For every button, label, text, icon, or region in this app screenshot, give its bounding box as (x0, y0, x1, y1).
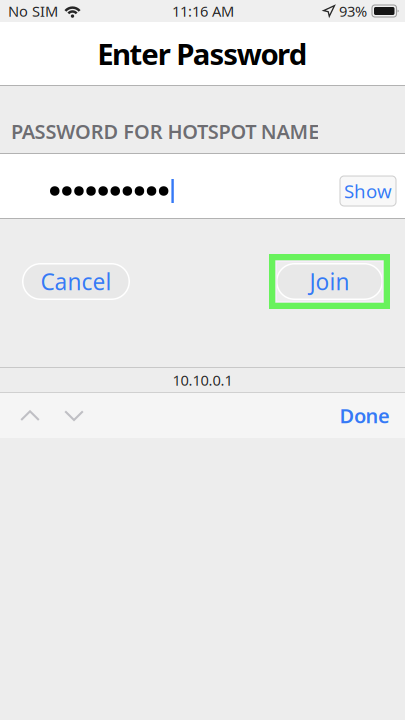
button[interactable]: Previous field (8, 393, 52, 437)
staticText: Enter Password (97, 34, 308, 73)
button[interactable]: Show (340, 176, 396, 206)
staticText: Cancel (40, 266, 111, 296)
staticText: Join (309, 266, 349, 296)
staticText: 10.10.0.1 (172, 370, 232, 390)
staticText: No SIM (8, 1, 58, 21)
button[interactable]: Join (269, 254, 390, 309)
staticText: Done (339, 402, 390, 429)
staticText: 93% (339, 1, 367, 21)
staticText: PASSWORD FOR HOTSPOT NAME (11, 118, 319, 145)
staticText: 11:16 AM (172, 1, 234, 21)
button[interactable]: Done (330, 393, 397, 437)
button[interactable]: Cancel (22, 263, 130, 300)
button[interactable]: Next field (52, 393, 96, 437)
staticText: Show (344, 179, 392, 203)
